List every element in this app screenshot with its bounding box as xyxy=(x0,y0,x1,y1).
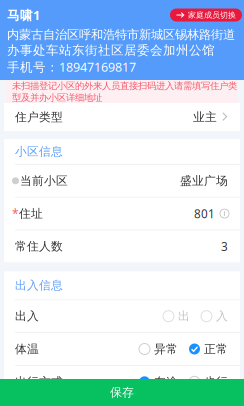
button[interactable]: 出 xyxy=(163,309,190,324)
staticText: 步行 xyxy=(204,374,228,389)
staticText: 马啸1 xyxy=(7,6,40,24)
staticText: 住址 xyxy=(19,206,43,221)
staticText: 入 xyxy=(216,309,228,324)
button[interactable]: 入 xyxy=(190,309,228,324)
staticText: 小区信息 xyxy=(15,144,63,159)
staticText: 801 xyxy=(194,206,215,222)
button[interactable]: * xyxy=(4,198,240,230)
staticText: 住户类型 xyxy=(15,110,63,124)
staticText: 型及并办小区详细地址 xyxy=(12,92,102,104)
staticText: * xyxy=(12,205,19,222)
staticText: 出入信息 xyxy=(15,278,63,293)
button[interactable]: 步行 xyxy=(178,374,228,389)
staticText: 内蒙古自治区呼和浩特市新城区锡林路街道 xyxy=(7,27,235,42)
staticText: 保存 xyxy=(110,385,134,400)
button[interactable]: 在途 xyxy=(139,374,178,389)
staticText: 出 xyxy=(178,309,190,324)
button[interactable]: 住户类型 xyxy=(4,103,240,131)
staticText: 出行方式 xyxy=(15,374,63,389)
button[interactable]: 正常 xyxy=(178,342,228,356)
staticText: 3 xyxy=(221,238,228,254)
staticText: 业主 xyxy=(193,110,217,124)
staticText: 家庭成员切换 xyxy=(188,10,236,20)
staticText: 未扫描登记小区的外来人员直接扫码进入请需填写住户类 xyxy=(12,80,237,92)
staticText: 办事处车站东街社区居委会加州公馆 xyxy=(7,42,215,58)
staticText: 正常 xyxy=(204,342,228,356)
staticText: 在途 xyxy=(154,374,178,389)
button[interactable]: 保存 xyxy=(0,379,244,406)
button[interactable]: 家庭成员切换 xyxy=(170,8,242,21)
staticText: 常住人数 xyxy=(15,239,63,254)
staticText: 当前小区 xyxy=(20,173,68,188)
staticText: 体温 xyxy=(15,342,39,356)
button[interactable]: 异常 xyxy=(139,342,178,356)
staticText: 异常 xyxy=(154,342,178,356)
staticText: 出入 xyxy=(15,309,39,324)
staticText: 盛业广场 xyxy=(180,173,228,188)
staticText: 手机号：18947169817 xyxy=(7,58,136,75)
